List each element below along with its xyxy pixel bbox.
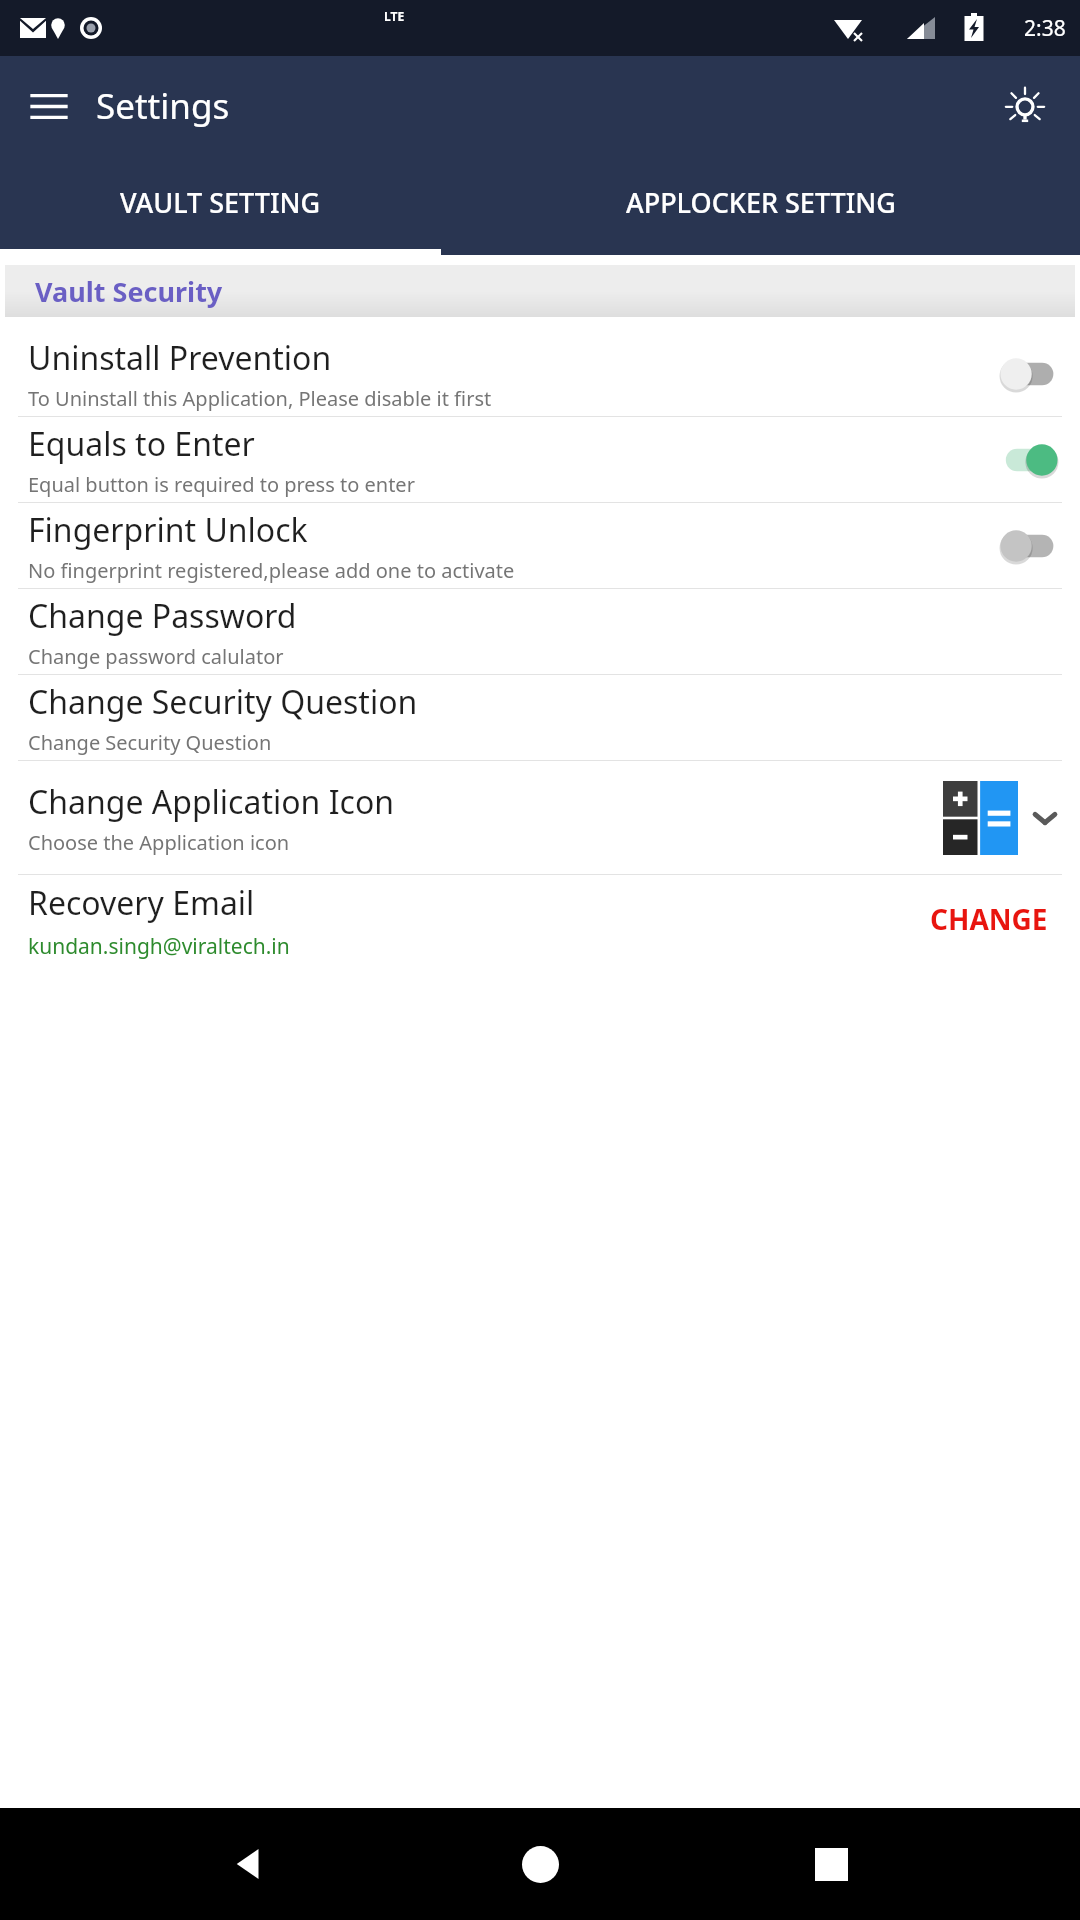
staticText: Change password calulator bbox=[28, 643, 284, 670]
button[interactable]: VAULT SETTING bbox=[0, 156, 441, 249]
staticText: Fingerprint Unlock bbox=[28, 508, 308, 552]
staticText: Change Application Icon bbox=[28, 780, 395, 824]
staticText: To Uninstall this Application, Please di… bbox=[28, 385, 492, 412]
button[interactable]: Back bbox=[207, 1822, 291, 1906]
staticText: Settings bbox=[96, 82, 230, 130]
button[interactable]: Switch on bbox=[1000, 443, 1058, 477]
staticText: Choose the Application icon bbox=[28, 829, 290, 856]
staticText: LTE bbox=[384, 8, 405, 24]
staticText: Equal button is required to press to ent… bbox=[28, 471, 415, 498]
staticText: Vault Security bbox=[35, 273, 223, 310]
staticText: Change Security Question bbox=[28, 729, 272, 756]
staticText: Equals to Enter bbox=[28, 422, 255, 466]
staticText: Change Security Question bbox=[28, 680, 418, 724]
button[interactable]: Home bbox=[498, 1822, 582, 1906]
button[interactable]: CHANGE bbox=[926, 892, 1052, 946]
button[interactable]: Toggle brightness bbox=[994, 75, 1056, 137]
button[interactable]: Change application icon bbox=[943, 781, 1018, 855]
staticText: Uninstall Prevention bbox=[28, 336, 332, 380]
button[interactable]: Open navigation menu bbox=[20, 77, 78, 135]
button[interactable]: Switch off bbox=[1000, 529, 1058, 563]
button[interactable]: Change Password bbox=[0, 589, 1080, 674]
button[interactable]: Equals to Enter bbox=[0, 417, 1080, 502]
button[interactable]: Recent apps bbox=[789, 1822, 873, 1906]
staticText: APPLOCKER SETTING bbox=[626, 184, 896, 221]
button[interactable]: Switch off bbox=[1000, 357, 1058, 391]
button[interactable]: Fingerprint Unlock bbox=[0, 503, 1080, 588]
button[interactable]: Recovery Email bbox=[0, 875, 1080, 963]
staticText: Change Password bbox=[28, 594, 297, 638]
button[interactable]: Change Security Question bbox=[0, 675, 1080, 760]
button[interactable]: Uninstall Prevention bbox=[0, 331, 1080, 416]
staticText: Recovery Email bbox=[28, 881, 255, 925]
staticText: kundan.singh@viraltech.in bbox=[28, 932, 290, 961]
button[interactable]: APPLOCKER SETTING bbox=[441, 156, 1080, 249]
staticText: VAULT SETTING bbox=[120, 184, 321, 221]
staticText: No fingerprint registered,please add one… bbox=[28, 557, 515, 584]
button[interactable]: Change Application Icon bbox=[0, 761, 1080, 874]
staticText: CHANGE bbox=[930, 900, 1048, 938]
staticText: 2:38 bbox=[1024, 14, 1066, 43]
